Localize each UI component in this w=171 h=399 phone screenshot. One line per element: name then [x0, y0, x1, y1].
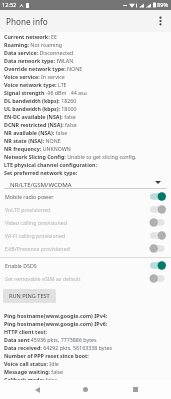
staticText: Signal strength -96 dBm 44 asu [4, 89, 171, 96]
staticText: NR available (NSA): false [4, 129, 171, 136]
button[interactable]: Recent apps [126, 380, 145, 399]
staticText: Voice network type: LTE [4, 81, 171, 88]
staticText: 89% [157, 1, 169, 9]
staticText: DL bandwidth (kbps): 18260 [4, 97, 171, 104]
staticText: NR state (NSA): NONE [4, 137, 171, 144]
staticText: Phone info [6, 16, 48, 27]
button[interactable]: Set removable eSIM as default [0, 272, 171, 285]
staticText: Data service: Disconnected [4, 49, 171, 56]
staticText: Data received: 64292 pkts, 56163338 byte… [4, 344, 171, 351]
staticText: EAB/Presence provisioned [5, 245, 70, 252]
staticText: Message waiting: false [4, 368, 171, 375]
button[interactable]: Wi-Fi calling provisioned [0, 229, 171, 242]
staticText: Roaming: Not roaming [4, 41, 171, 48]
staticText: Video calling provisioned [5, 219, 68, 226]
button[interactable]: NR/LTE/GSM/WCDMA [0, 177, 171, 190]
button[interactable]: More options [149, 10, 171, 32]
button[interactable]: Mobile radio power [0, 190, 171, 203]
button[interactable]: Enable DSDS [0, 259, 171, 272]
staticText: Mobile radio power [5, 193, 54, 200]
staticText: RUN PING TEST [9, 292, 50, 300]
staticText: UL bandwidth (kbps): 18000 [4, 105, 171, 112]
staticText: Callback mode: false [4, 376, 171, 380]
staticText: Enable DSDS [5, 262, 37, 269]
staticText: Number of PPP reset since boot: [4, 352, 171, 359]
staticText: Voice service: In service [4, 73, 171, 80]
staticText: Network Slicing Config: Unable to get sl… [4, 153, 171, 160]
staticText: NR frequency: UNKNOWN [4, 145, 171, 152]
staticText: DCNR restricted (NSA): false [4, 121, 171, 128]
staticText: VoLTE provisioned [5, 206, 51, 213]
staticText: 12:52 [2, 1, 17, 9]
staticText: Set preferred network type: [4, 169, 171, 176]
staticText: EN-DC available (NSA): false [4, 113, 171, 120]
button[interactable]: VoLTE provisioned [0, 203, 171, 216]
staticText: Wi-Fi calling provisioned [5, 232, 66, 239]
staticText: Data network type: IWLAN [4, 57, 171, 64]
staticText: Ping hostname(www.google.com) IPv4: [4, 312, 171, 319]
button[interactable]: Video calling provisioned [0, 216, 171, 229]
staticText: NR/LTE/GSM/WCDMA [10, 180, 72, 188]
staticText: Current network: EE [4, 33, 171, 40]
staticText: LTE physical channel configuration: [4, 161, 171, 168]
staticText: Voice call status: Idle [4, 360, 171, 367]
staticText: Data sent 45936 pkts, 7773886 bytes [4, 336, 171, 343]
staticText: HTTP client test: [4, 328, 171, 335]
button[interactable]: EAB/Presence provisioned [0, 242, 171, 255]
button[interactable]: Back [28, 380, 47, 399]
button[interactable]: Home [76, 380, 95, 399]
staticText: Ping hostname(www.google.com) IPv6: [4, 320, 171, 327]
staticText: Set removable eSIM as default [5, 275, 81, 282]
staticText: Override network type: NONE [4, 65, 171, 72]
button[interactable]: RUN PING TEST [3, 289, 56, 303]
